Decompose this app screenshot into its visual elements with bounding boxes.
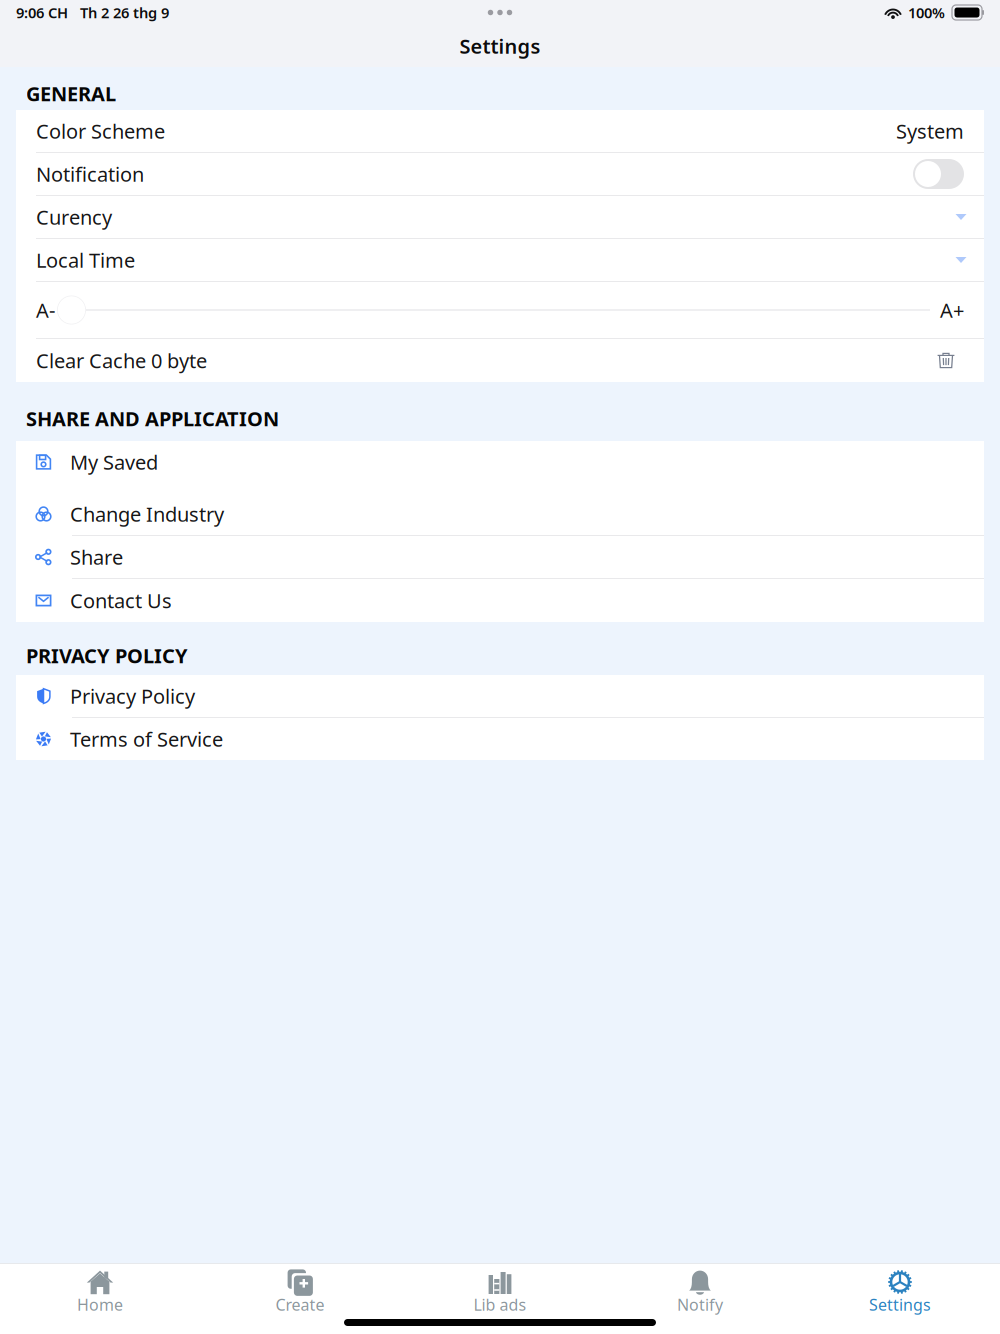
staticText: PRIVACY POLICY xyxy=(26,642,188,669)
button[interactable]: Change Industry xyxy=(16,493,984,535)
staticText: Notification xyxy=(36,161,144,187)
staticText: Th 2 26 thg 9 xyxy=(80,3,169,22)
staticText: Share xyxy=(70,544,123,570)
staticText: Settings xyxy=(869,1294,931,1315)
button[interactable]: Notification xyxy=(16,153,984,195)
staticText: GENERAL xyxy=(26,80,116,107)
button[interactable]: Color Scheme xyxy=(16,110,984,152)
staticText: Clear Cache 0 byte xyxy=(36,347,207,374)
staticText: 100% xyxy=(908,3,945,22)
staticText: Notify xyxy=(677,1294,723,1315)
button[interactable]: Home xyxy=(0,1269,200,1311)
staticText: Create xyxy=(275,1294,324,1315)
button[interactable]: Notify xyxy=(600,1269,800,1311)
staticText: Settings xyxy=(459,33,540,59)
staticText: A- xyxy=(36,297,55,323)
staticText: System xyxy=(896,118,964,144)
button[interactable]: My Saved xyxy=(16,441,984,483)
staticText: Local Time xyxy=(36,247,135,273)
staticText: Lib ads xyxy=(473,1294,526,1315)
button[interactable]: Contact Us xyxy=(16,579,984,622)
staticText: Terms of Service xyxy=(70,726,223,752)
staticText: Home xyxy=(77,1294,123,1315)
staticText: Color Scheme xyxy=(36,118,165,144)
staticText: A+ xyxy=(940,297,964,323)
staticText: Change Industry xyxy=(70,501,224,527)
button[interactable]: Local Time xyxy=(16,239,984,281)
button[interactable]: Curency xyxy=(16,196,984,238)
staticText: My Saved xyxy=(70,449,158,475)
button[interactable]: Clear Cache 0 byte xyxy=(16,339,984,382)
button[interactable]: Lib ads xyxy=(400,1269,600,1311)
button[interactable]: Settings xyxy=(800,1269,1000,1311)
staticText: 9:06 CH xyxy=(16,3,68,22)
staticText: Privacy Policy xyxy=(70,683,195,709)
staticText: Contact Us xyxy=(70,587,172,614)
button[interactable]: Create xyxy=(200,1269,400,1311)
button[interactable]: A- xyxy=(16,282,984,338)
button[interactable]: Terms of Service xyxy=(16,718,984,760)
button[interactable]: Privacy Policy xyxy=(16,675,984,717)
staticText: SHARE AND APPLICATION xyxy=(26,405,279,432)
button[interactable]: Share xyxy=(16,536,984,578)
staticText: Curency xyxy=(36,204,112,230)
